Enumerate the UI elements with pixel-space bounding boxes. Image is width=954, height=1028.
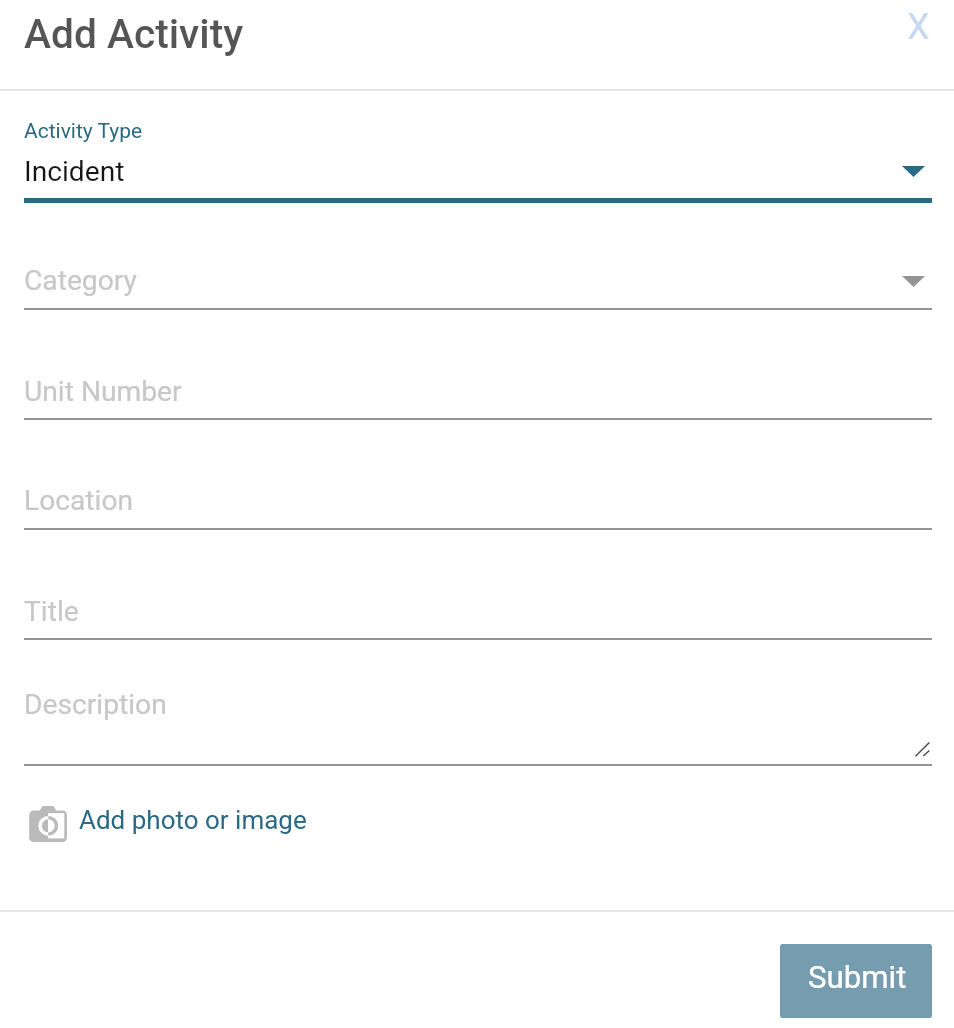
button[interactable]: Close — [886, 2, 950, 52]
staticText: X — [907, 6, 930, 48]
button[interactable] — [24, 358, 932, 420]
staticText: Submit — [808, 959, 907, 996]
button[interactable] — [24, 100, 932, 202]
staticText: Location — [24, 484, 134, 517]
button[interactable]: Select activity type — [881, 150, 945, 192]
button[interactable] — [24, 672, 932, 766]
staticText: Title — [24, 595, 79, 628]
staticText: Unit Number — [24, 375, 182, 408]
staticText: Add photo or image — [79, 805, 307, 835]
staticText: Description — [24, 688, 167, 721]
staticText: Incident — [24, 155, 125, 188]
other: Resize description — [908, 736, 936, 764]
button[interactable] — [24, 578, 932, 640]
staticText: Category — [24, 264, 137, 297]
button[interactable]: Add photo or image — [24, 800, 309, 846]
button[interactable]: Select category — [881, 260, 945, 302]
button[interactable] — [24, 248, 932, 310]
button[interactable]: Submit — [780, 944, 932, 1018]
button[interactable] — [24, 468, 932, 530]
staticText: Add Activity — [24, 10, 244, 58]
staticText: Activity Type — [24, 119, 143, 144]
